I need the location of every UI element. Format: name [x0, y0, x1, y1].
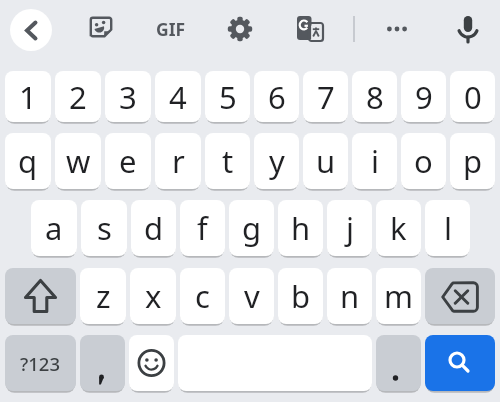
staticText: 3 — [119, 76, 137, 118]
staticText: q — [18, 140, 38, 182]
button[interactable]: f — [180, 200, 225, 256]
button[interactable] — [446, 7, 490, 51]
button[interactable] — [80, 335, 125, 391]
button[interactable]: 7 — [303, 71, 348, 122]
button[interactable]: m — [376, 268, 421, 324]
button[interactable]: r — [155, 133, 201, 189]
staticText: d — [144, 207, 164, 249]
button[interactable] — [129, 335, 174, 391]
staticText: p — [463, 140, 483, 182]
button[interactable] — [376, 335, 421, 391]
staticText: 0 — [464, 76, 482, 118]
button[interactable]: e — [105, 133, 151, 189]
button[interactable]: 5 — [205, 71, 250, 122]
staticText: o — [414, 140, 433, 182]
button[interactable] — [80, 7, 124, 51]
button[interactable]: 9 — [401, 71, 446, 122]
button[interactable]: n — [327, 268, 372, 324]
staticText: m — [384, 275, 413, 317]
staticText: x — [145, 275, 162, 317]
button[interactable]: z — [80, 268, 126, 324]
button[interactable]: d — [131, 200, 176, 256]
button[interactable]: 6 — [254, 71, 299, 122]
button[interactable]: v — [229, 268, 274, 324]
button[interactable] — [5, 268, 76, 324]
staticText: n — [340, 275, 360, 317]
button[interactable]: c — [180, 268, 225, 324]
button[interactable] — [288, 7, 332, 51]
button[interactable]: 1 — [5, 71, 51, 122]
staticText: z — [96, 275, 111, 317]
staticText: w — [66, 140, 91, 182]
staticText: GIF — [156, 17, 186, 41]
button[interactable]: g — [229, 200, 274, 256]
staticText: 7 — [317, 76, 335, 118]
staticText: 1 — [19, 76, 37, 118]
staticText: k — [390, 207, 407, 249]
staticText: s — [97, 207, 112, 249]
staticText: r — [172, 140, 185, 182]
button[interactable]: s — [81, 200, 127, 256]
button[interactable]: u — [303, 133, 348, 189]
staticText: b — [291, 275, 311, 317]
staticText: ?123 — [20, 351, 61, 376]
staticText: 9 — [415, 76, 433, 118]
staticText: u — [316, 140, 336, 182]
button[interactable] — [10, 9, 52, 51]
button[interactable]: w — [55, 133, 101, 189]
staticText: i — [371, 140, 379, 182]
staticText: 8 — [366, 76, 384, 118]
staticText: h — [291, 207, 311, 249]
staticText: 4 — [169, 76, 187, 118]
button[interactable]: h — [278, 200, 323, 256]
button[interactable] — [425, 268, 495, 324]
staticText: v — [244, 275, 260, 317]
button[interactable]: GIF — [149, 7, 193, 51]
staticText: j — [346, 207, 354, 249]
button[interactable]: a — [31, 200, 77, 256]
button[interactable]: i — [352, 133, 397, 189]
button[interactable]: y — [254, 133, 299, 189]
button[interactable] — [375, 7, 419, 51]
button[interactable]: ?123 — [5, 335, 76, 391]
staticText: g — [242, 207, 262, 249]
staticText: c — [195, 275, 210, 317]
button[interactable]: b — [278, 268, 323, 324]
button[interactable]: 0 — [450, 71, 495, 122]
staticText: t — [222, 140, 234, 182]
staticText: l — [444, 207, 452, 249]
button[interactable]: 4 — [155, 71, 201, 122]
button[interactable]: q — [5, 133, 51, 189]
staticText: a — [45, 207, 63, 249]
button[interactable]: t — [205, 133, 250, 189]
button[interactable]: 8 — [352, 71, 397, 122]
staticText: f — [197, 207, 208, 249]
button[interactable]: o — [401, 133, 446, 189]
staticText: 6 — [268, 76, 286, 118]
button[interactable]: j — [327, 200, 372, 256]
button[interactable] — [218, 7, 262, 51]
button[interactable]: k — [376, 200, 421, 256]
button[interactable]: 3 — [105, 71, 151, 122]
staticText: 2 — [69, 76, 87, 118]
button[interactable]: x — [130, 268, 176, 324]
staticText: e — [119, 140, 137, 182]
staticText: y — [269, 140, 285, 182]
button[interactable]: l — [425, 200, 470, 256]
button[interactable]: p — [450, 133, 495, 189]
button[interactable] — [425, 335, 495, 391]
button[interactable]: 2 — [55, 71, 101, 122]
staticText: 5 — [219, 76, 237, 118]
